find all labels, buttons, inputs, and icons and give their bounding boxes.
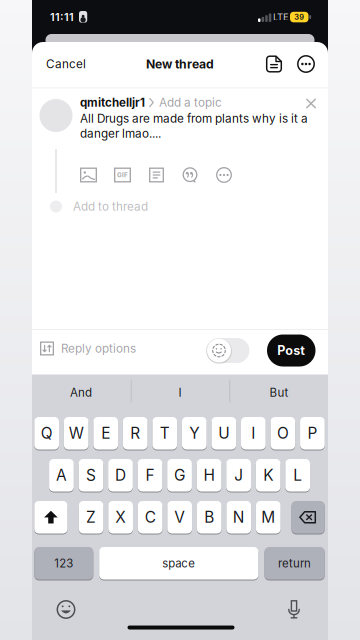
button[interactable]: F	[138, 459, 162, 491]
button[interactable]: Hidden words	[204, 336, 250, 365]
button[interactable]: More options	[297, 55, 315, 73]
button[interactable]: But	[230, 380, 328, 404]
staticText: return	[278, 556, 311, 570]
staticText: 39	[294, 12, 304, 22]
button[interactable]: V	[167, 501, 192, 533]
staticText: New thread	[146, 57, 214, 71]
staticText: Post	[277, 343, 305, 358]
staticText: M	[261, 508, 275, 526]
staticText: Add a topic	[159, 95, 222, 110]
button[interactable]: More attachments	[215, 166, 233, 184]
button[interactable]: And	[32, 380, 130, 404]
button[interactable]: X	[108, 501, 133, 533]
staticText: P	[307, 424, 317, 442]
staticText: B	[204, 508, 214, 526]
button[interactable]: A	[49, 459, 74, 491]
staticText: 11:11	[50, 10, 74, 24]
button[interactable]: H	[197, 459, 221, 491]
staticText: L	[293, 466, 302, 484]
button[interactable]: Shift	[34, 501, 67, 533]
button[interactable]: Reply options	[40, 340, 136, 356]
staticText: G	[174, 466, 185, 484]
button[interactable]: D	[108, 459, 133, 491]
staticText: And	[70, 385, 92, 399]
staticText: All Drugs are made from plants why is it…	[80, 111, 308, 126]
button[interactable]: N	[226, 501, 251, 533]
button[interactable]: G	[167, 459, 192, 491]
button[interactable]: Emoji	[56, 600, 75, 619]
staticText: Z	[86, 508, 96, 526]
staticText: space	[162, 556, 195, 570]
button[interactable]: Add photo	[80, 167, 97, 182]
button[interactable]: Dictation	[288, 600, 300, 619]
staticText: R	[130, 424, 140, 442]
staticText: Y	[189, 424, 199, 442]
button[interactable]: S	[79, 459, 103, 491]
button[interactable]: Q	[34, 417, 59, 449]
staticText: C	[145, 508, 156, 526]
button[interactable]: P	[300, 417, 325, 449]
button[interactable]: Quote	[182, 167, 198, 182]
staticText: qmitchelljr1	[80, 95, 145, 109]
staticText: I	[178, 385, 181, 399]
staticText: N	[233, 508, 245, 526]
staticText: H	[204, 466, 215, 484]
button[interactable]: L	[285, 459, 310, 491]
button[interactable]: Delete	[291, 501, 325, 533]
button[interactable]: Drafts	[265, 55, 283, 73]
button[interactable]: Add a topic	[149, 95, 259, 109]
button[interactable]: Add GIF	[114, 167, 131, 182]
staticText: O	[277, 424, 289, 442]
button[interactable]: E	[93, 417, 118, 449]
button[interactable]: K	[256, 459, 280, 491]
button[interactable]: U	[211, 417, 236, 449]
staticText: V	[174, 508, 185, 526]
button[interactable]: Add poll	[149, 167, 164, 182]
button[interactable]: Add to thread	[50, 199, 148, 213]
staticText: S	[86, 466, 96, 484]
button[interactable]: I	[241, 417, 266, 449]
staticText: U	[218, 424, 229, 442]
button[interactable]: T	[152, 417, 177, 449]
staticText: danger lmao....	[80, 126, 161, 141]
button[interactable]: I	[131, 380, 229, 404]
button[interactable]: Z	[79, 501, 103, 533]
button[interactable]: 123	[34, 547, 93, 579]
staticText: I	[251, 424, 255, 442]
staticText: X	[115, 508, 126, 526]
staticText: Reply options	[61, 341, 136, 356]
staticText: Q	[41, 424, 53, 442]
button[interactable]: C	[138, 501, 162, 533]
button[interactable]: R	[123, 417, 148, 449]
staticText: E	[101, 424, 110, 442]
staticText: 123	[54, 556, 73, 570]
button[interactable]: Post	[267, 334, 315, 366]
button[interactable]: space	[99, 547, 258, 579]
button[interactable]: O	[270, 417, 295, 449]
staticText: J	[234, 466, 243, 484]
button[interactable]: B	[197, 501, 222, 533]
staticText: F	[145, 466, 154, 484]
button[interactable]: Close	[302, 94, 320, 112]
button[interactable]: Y	[182, 417, 207, 449]
button[interactable]: W	[64, 417, 88, 449]
button[interactable]: J	[226, 459, 251, 491]
staticText: K	[263, 466, 273, 484]
staticText: LTE	[273, 11, 289, 23]
button[interactable]: Cancel	[46, 55, 106, 73]
staticText: A	[56, 466, 67, 484]
staticText: D	[115, 466, 126, 484]
staticText: GIF	[117, 171, 128, 179]
button[interactable]: return	[264, 547, 325, 579]
staticText: But	[269, 385, 288, 399]
staticText: Cancel	[46, 57, 86, 71]
button[interactable]: M	[256, 501, 281, 533]
staticText: Add to thread	[73, 199, 148, 214]
staticText: T	[160, 424, 170, 442]
staticText: W	[69, 424, 84, 442]
